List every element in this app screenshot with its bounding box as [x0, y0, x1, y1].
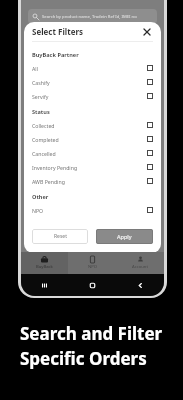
button[interactable]: Back — [116, 274, 164, 296]
staticText: Select Filters — [32, 26, 84, 37]
staticText: BuyBack — [36, 264, 53, 270]
staticText: BuyBack Partner — [32, 51, 79, 59]
staticText: NPO — [88, 264, 97, 270]
staticText: Reset — [54, 233, 67, 240]
button[interactable]: Completed — [32, 132, 153, 146]
button[interactable]: AWB Pending — [32, 174, 153, 188]
staticText: All — [32, 65, 38, 72]
staticText: Collected — [32, 122, 55, 129]
staticText: Servify — [32, 93, 49, 100]
button[interactable]: Cashify — [32, 75, 153, 89]
staticText: Inventory Pending — [32, 164, 78, 171]
button[interactable]: Servify — [32, 89, 153, 103]
staticText: Status — [32, 108, 50, 116]
button[interactable]: Account — [116, 252, 164, 274]
staticText: Search by product name, Tradein Ref Id, … — [42, 14, 137, 20]
staticText: AWB Pending — [32, 178, 65, 185]
button[interactable]: Close — [140, 25, 153, 38]
button[interactable]: Recent apps — [21, 274, 68, 296]
staticText: Apply — [117, 233, 132, 240]
staticText: Completed — [32, 136, 59, 143]
button[interactable]: NPO — [68, 252, 116, 274]
button[interactable]: Collected — [32, 118, 153, 132]
staticText: NPO — [32, 207, 44, 214]
button[interactable]: NPO — [32, 203, 153, 217]
button[interactable]: Search by product name, Tradein Ref Id, … — [28, 9, 157, 24]
staticText: Cashify — [32, 79, 50, 86]
button[interactable]: Home — [68, 274, 116, 296]
button[interactable]: All — [32, 61, 153, 75]
button[interactable]: Apply — [96, 229, 153, 244]
staticText: Specific Orders — [20, 347, 147, 370]
button[interactable]: Reset — [32, 229, 88, 244]
button[interactable]: Cancelled — [32, 146, 153, 160]
button[interactable]: Inventory Pending — [32, 160, 153, 174]
staticText: Cancelled — [32, 150, 56, 157]
staticText: Other — [32, 193, 49, 201]
staticText: Account — [132, 264, 148, 270]
button[interactable]: BuyBack — [21, 252, 68, 274]
staticText: Search and Filter — [20, 322, 163, 345]
